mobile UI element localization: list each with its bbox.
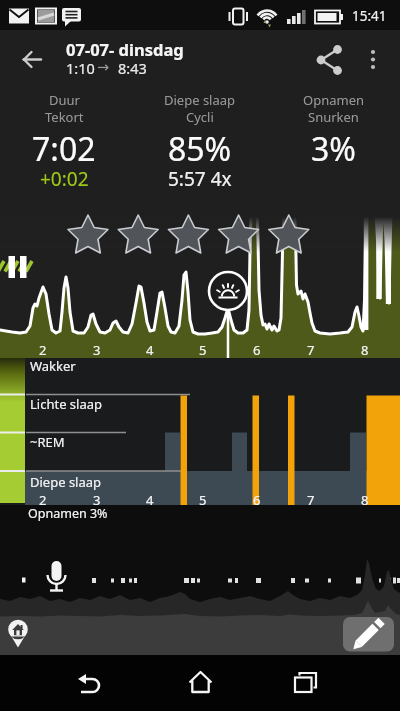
staticText: 15:41 [352, 7, 387, 25]
staticText: Diepe slaap [164, 91, 236, 109]
button[interactable] [62, 212, 318, 260]
staticText: 1:10 [66, 58, 95, 78]
staticText: 5 [199, 491, 207, 509]
staticText: 4 [146, 491, 154, 509]
staticText: 7:02 [32, 127, 96, 171]
staticText: 4 [146, 341, 154, 359]
staticText: Opnamen 3% [28, 505, 108, 522]
staticText: 7 [307, 491, 315, 509]
staticText: Wakker [30, 357, 76, 375]
staticText: 3 [93, 491, 101, 509]
staticText: 6 [253, 491, 261, 509]
button[interactable] [356, 38, 392, 80]
button[interactable] [341, 615, 396, 653]
staticText: Diepe slaap [30, 473, 102, 491]
staticText: Duur [49, 91, 80, 109]
button[interactable] [168, 658, 234, 708]
staticText: 8 [361, 341, 369, 359]
button[interactable] [274, 658, 340, 708]
button[interactable] [8, 38, 56, 80]
button[interactable] [4, 614, 36, 654]
button[interactable] [308, 38, 352, 80]
staticText: 3 [93, 341, 101, 359]
staticText: +0:02 [40, 166, 89, 192]
staticText: Lichte slaap [30, 395, 103, 413]
staticText: 07-07- dinsdag [66, 38, 184, 60]
staticText: Opnamen [303, 91, 364, 109]
staticText: 5 [199, 341, 207, 359]
staticText: 2 [39, 491, 47, 509]
staticText: ~REM [30, 433, 65, 451]
staticText: 6 [253, 341, 261, 359]
staticText: 8 [361, 491, 369, 509]
staticText: Cycli [186, 108, 214, 126]
button[interactable] [206, 269, 250, 313]
staticText: 8:43 [118, 58, 147, 78]
button[interactable] [60, 658, 130, 708]
staticText: → [97, 59, 110, 76]
staticText: 3% [311, 127, 356, 171]
staticText: 2 [39, 341, 47, 359]
staticText: 85% [168, 127, 232, 171]
staticText: Snurken [308, 108, 359, 126]
staticText: Tekort [45, 108, 84, 126]
staticText: 7 [307, 341, 315, 359]
staticText: 5:57 4x [168, 166, 232, 192]
